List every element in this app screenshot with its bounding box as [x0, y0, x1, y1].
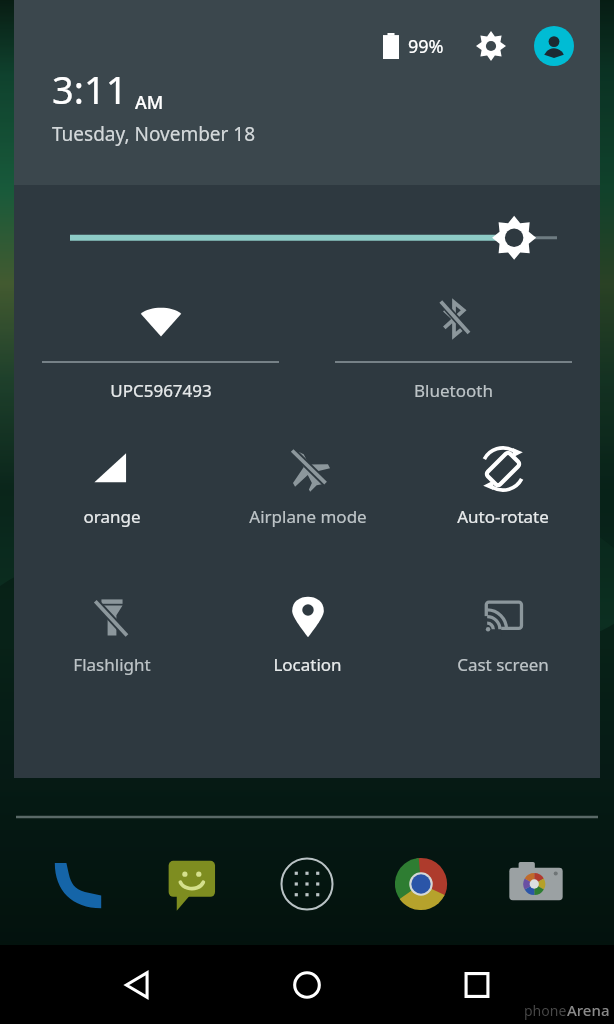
button[interactable]: Bluetooth	[307, 273, 600, 423]
staticText: phone	[524, 1001, 567, 1020]
button[interactable]: Home	[274, 952, 340, 1018]
staticText: Tuesday, November 18	[52, 121, 256, 147]
button[interactable]: Brightness	[14, 185, 600, 273]
button[interactable]: Auto-rotate	[405, 437, 600, 557]
button[interactable]: Phone	[42, 848, 114, 920]
staticText: Cast screen	[457, 653, 549, 676]
button[interactable]: All apps	[271, 848, 343, 920]
staticText: AM	[135, 90, 164, 115]
button[interactable]: Chrome	[385, 848, 457, 920]
staticText: 3:11	[52, 63, 128, 115]
staticText: orange	[83, 505, 141, 528]
button[interactable]: Messaging	[157, 848, 229, 920]
staticText: 99%	[408, 34, 444, 59]
button[interactable]: Settings	[474, 29, 508, 63]
button[interactable]: User profile	[534, 26, 574, 66]
staticText: Airplane mode	[249, 505, 367, 528]
staticText: Location	[273, 653, 342, 676]
button[interactable]: Back	[104, 952, 170, 1018]
staticText: Auto-rotate	[457, 505, 549, 528]
button[interactable]: Airplane mode	[210, 437, 405, 557]
button[interactable]: Camera	[500, 848, 572, 920]
staticText: Arena	[567, 1000, 610, 1020]
button[interactable]: Recents	[444, 952, 510, 1018]
button[interactable]: UPC5967493	[14, 273, 307, 423]
button[interactable]: Cast screen	[405, 585, 600, 705]
button[interactable]: Flashlight	[14, 585, 210, 705]
staticText: UPC5967493	[110, 379, 212, 402]
button[interactable]: Location	[210, 585, 405, 705]
staticText: Bluetooth	[414, 379, 493, 402]
staticText: Flashlight	[73, 653, 151, 676]
button[interactable]: orange	[14, 437, 210, 557]
